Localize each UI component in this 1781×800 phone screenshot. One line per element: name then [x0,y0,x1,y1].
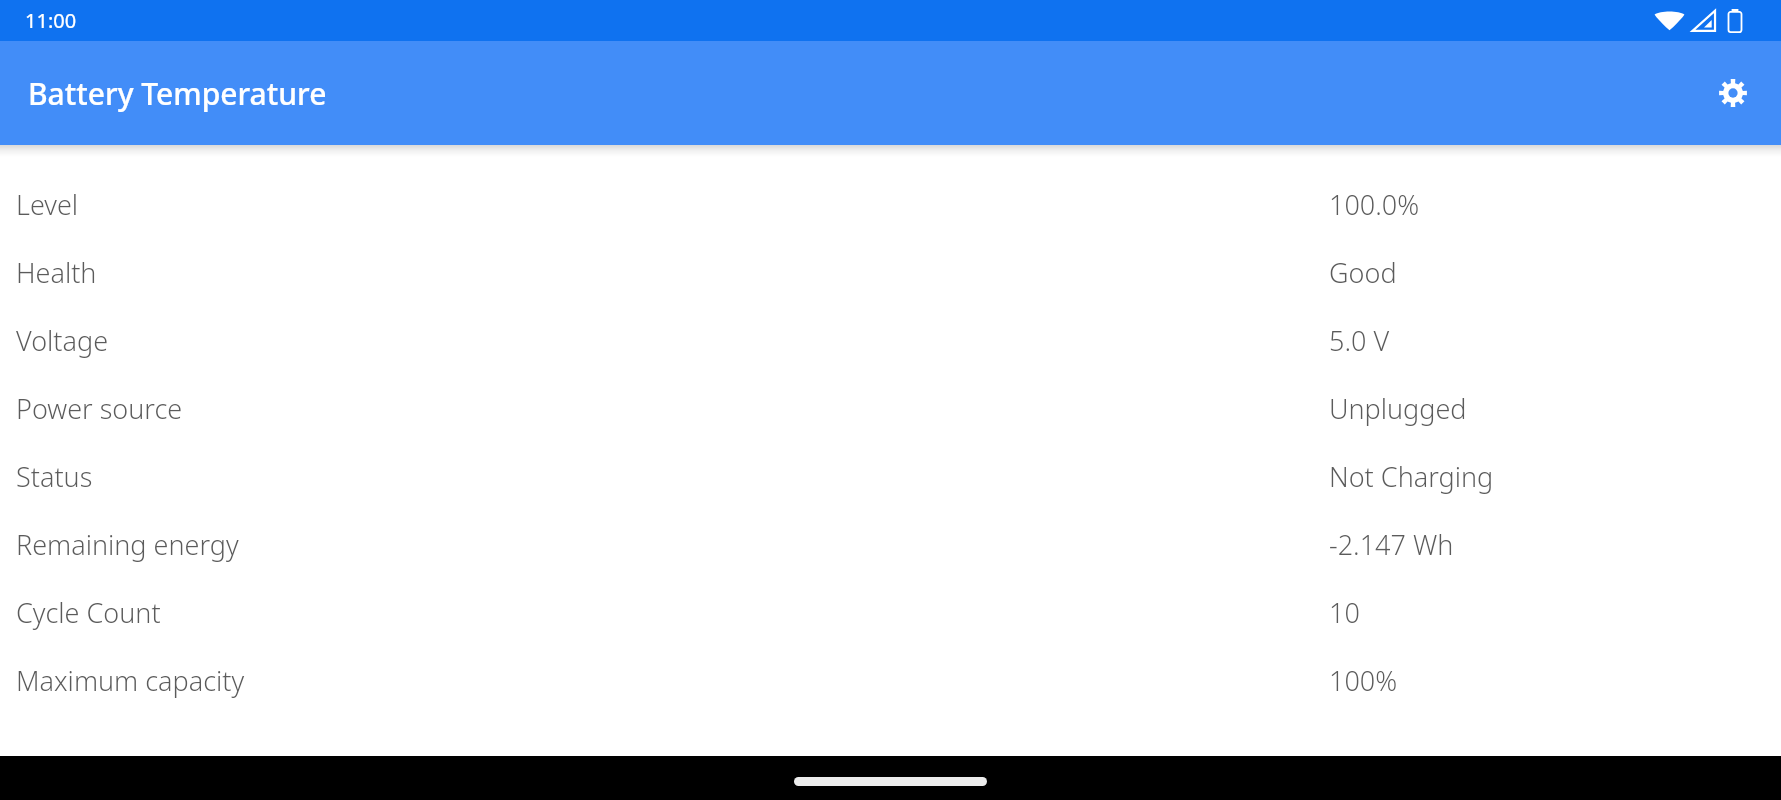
staticText: Not Charging [1329,458,1781,495]
staticText: -2.147 Wh [1329,526,1781,563]
staticText: 5.0 V [1329,322,1781,359]
staticText: 100% [1329,662,1781,699]
button[interactable]: Voltage [0,306,1781,374]
staticText: Unplugged [1329,390,1781,427]
staticText: Battery Temperature [28,73,327,114]
staticText: Power source [16,390,1329,427]
button[interactable]: Settings [1707,67,1759,119]
button[interactable]: Remaining energy [0,510,1781,578]
button[interactable]: Health [0,238,1781,306]
button[interactable]: Maximum capacity [0,646,1781,714]
staticText: Maximum capacity [16,662,1329,699]
staticText: Good [1329,254,1781,291]
button[interactable]: Home gesture bar [794,777,987,786]
button[interactable]: Power source [0,374,1781,442]
staticText: 10 [1329,594,1781,631]
button[interactable]: Cycle Count [0,578,1781,646]
staticText: Status [16,458,1329,495]
button[interactable]: Level [0,170,1781,238]
staticText: Cycle Count [16,594,1329,631]
staticText: 11:00 [25,7,77,34]
staticText: Level [16,186,1329,223]
staticText: 100.0% [1329,186,1781,223]
button[interactable]: Status [0,442,1781,510]
staticText: Remaining energy [16,526,1329,563]
staticText: Voltage [16,322,1329,359]
staticText: Health [16,254,1329,291]
